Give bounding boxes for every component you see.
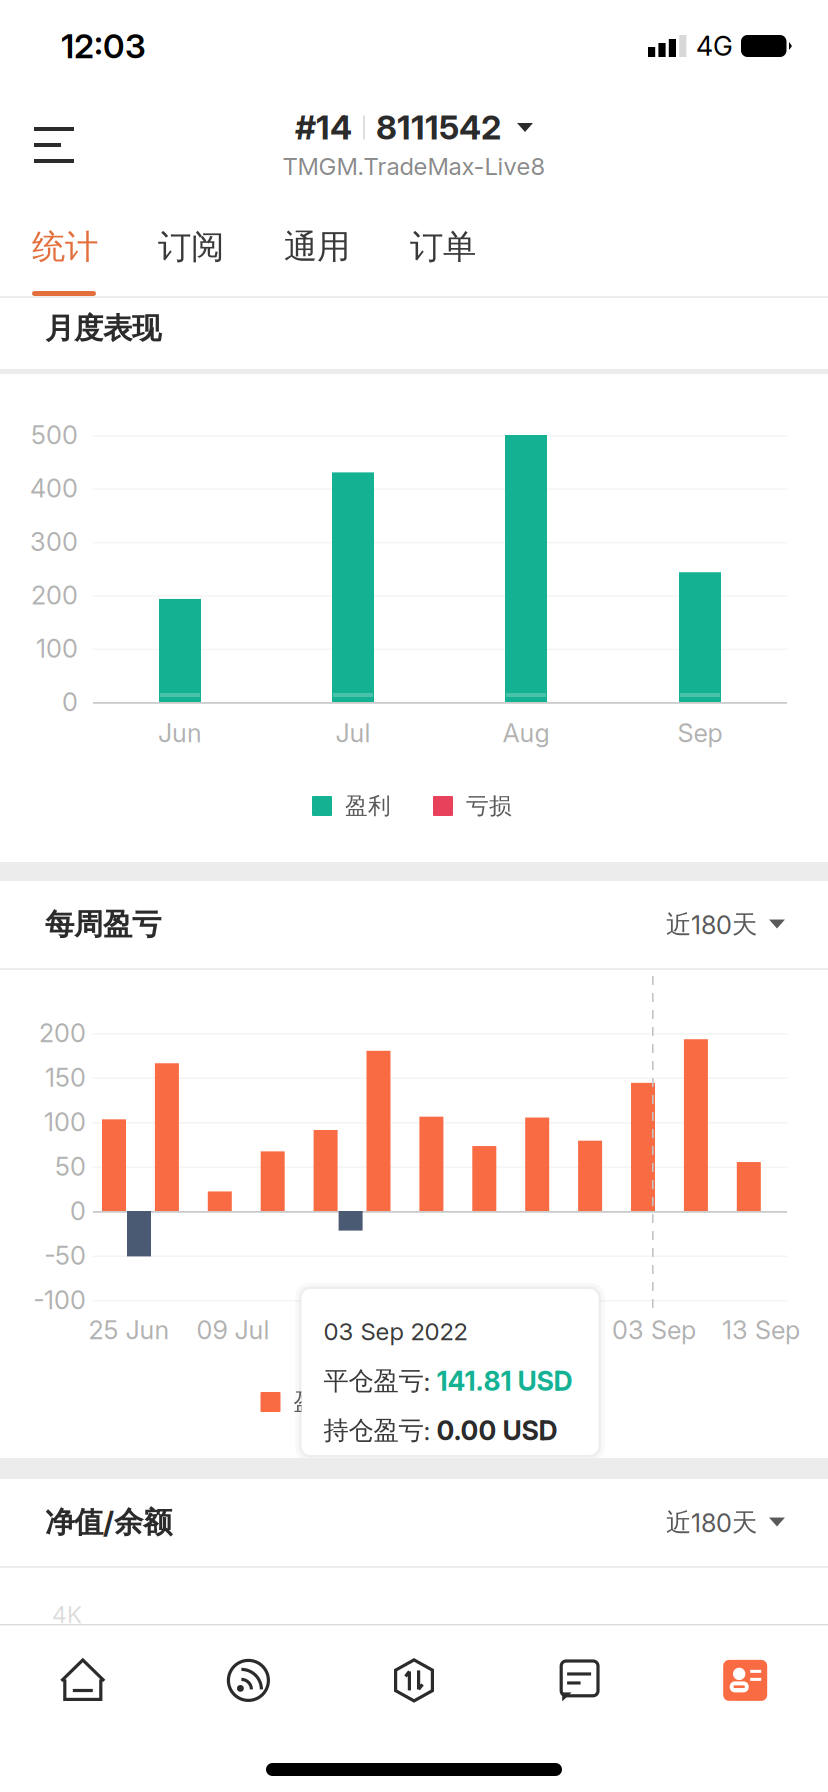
staticText: 盈利 bbox=[293, 1388, 339, 1416]
staticText: 月度表现 bbox=[45, 310, 161, 347]
button[interactable]: 近180天 bbox=[662, 1486, 790, 1558]
staticText: 200 bbox=[31, 580, 78, 611]
staticText: TMGM.TradeMax-Live8 bbox=[282, 152, 545, 181]
staticText: 每周盈亏 bbox=[45, 906, 161, 943]
staticText: 400 bbox=[30, 473, 78, 504]
button[interactable]: Messages bbox=[497, 1625, 662, 1735]
staticText: 100 bbox=[36, 633, 78, 664]
staticText: 4G bbox=[696, 30, 733, 62]
button[interactable]: 近180天 bbox=[662, 888, 790, 960]
staticText: 100 bbox=[44, 1107, 86, 1137]
button[interactable]: Trade bbox=[331, 1625, 497, 1735]
staticText: 0.00 USD bbox=[436, 1414, 557, 1447]
button[interactable]: 统计 bbox=[32, 190, 158, 296]
staticText: -100 bbox=[33, 1285, 86, 1315]
staticText: 统计 bbox=[32, 226, 98, 268]
staticText: 订阅 bbox=[158, 226, 224, 268]
staticText: 4K bbox=[52, 1601, 82, 1629]
staticText: 09 Jul bbox=[196, 1315, 269, 1345]
staticText: 150 bbox=[45, 1062, 86, 1093]
staticText: 盈利 bbox=[345, 792, 391, 820]
staticText: 近180天 bbox=[666, 1506, 757, 1538]
staticText: 200 bbox=[39, 1018, 86, 1048]
button[interactable]: #14 bbox=[262, 93, 565, 189]
button[interactable]: Account bbox=[662, 1625, 828, 1735]
staticText: -50 bbox=[44, 1240, 86, 1271]
button[interactable]: Menu bbox=[0, 94, 108, 188]
staticText: 25 Jun bbox=[88, 1315, 169, 1345]
button[interactable]: 订单 bbox=[410, 190, 536, 296]
button[interactable]: Home bbox=[0, 1625, 166, 1735]
button[interactable]: Signals bbox=[166, 1625, 331, 1735]
staticText: 通用 bbox=[284, 226, 350, 268]
staticText: 0 bbox=[70, 1196, 86, 1226]
staticText: 500 bbox=[31, 420, 78, 450]
staticText: 300 bbox=[30, 526, 78, 557]
staticText: #14 bbox=[295, 107, 352, 148]
staticText: 亏损 bbox=[466, 792, 512, 820]
staticText: Aug bbox=[502, 718, 549, 748]
staticText: 13 Sep bbox=[722, 1315, 800, 1345]
staticText: 净值/余额 bbox=[45, 1504, 172, 1541]
staticText: 0 bbox=[62, 687, 78, 717]
button[interactable]: 订阅 bbox=[158, 190, 284, 296]
staticText: 12:03 bbox=[61, 26, 146, 66]
staticText: 8111542 bbox=[376, 107, 501, 148]
staticText: Jun bbox=[158, 718, 202, 748]
staticText: 141.81 USD bbox=[436, 1365, 572, 1397]
staticText: 50 bbox=[55, 1151, 86, 1182]
staticText: 03 Sep bbox=[612, 1315, 696, 1345]
staticText: 订单 bbox=[410, 226, 476, 268]
staticText: 持仓盈亏: bbox=[323, 1414, 430, 1446]
staticText: 平仓盈亏: bbox=[323, 1365, 430, 1397]
staticText: Jul bbox=[335, 718, 370, 748]
button[interactable]: 通用 bbox=[284, 190, 410, 296]
staticText: Sep bbox=[677, 718, 722, 748]
staticText: 近180天 bbox=[666, 908, 757, 940]
staticText: 03 Sep 2022 bbox=[323, 1317, 467, 1346]
